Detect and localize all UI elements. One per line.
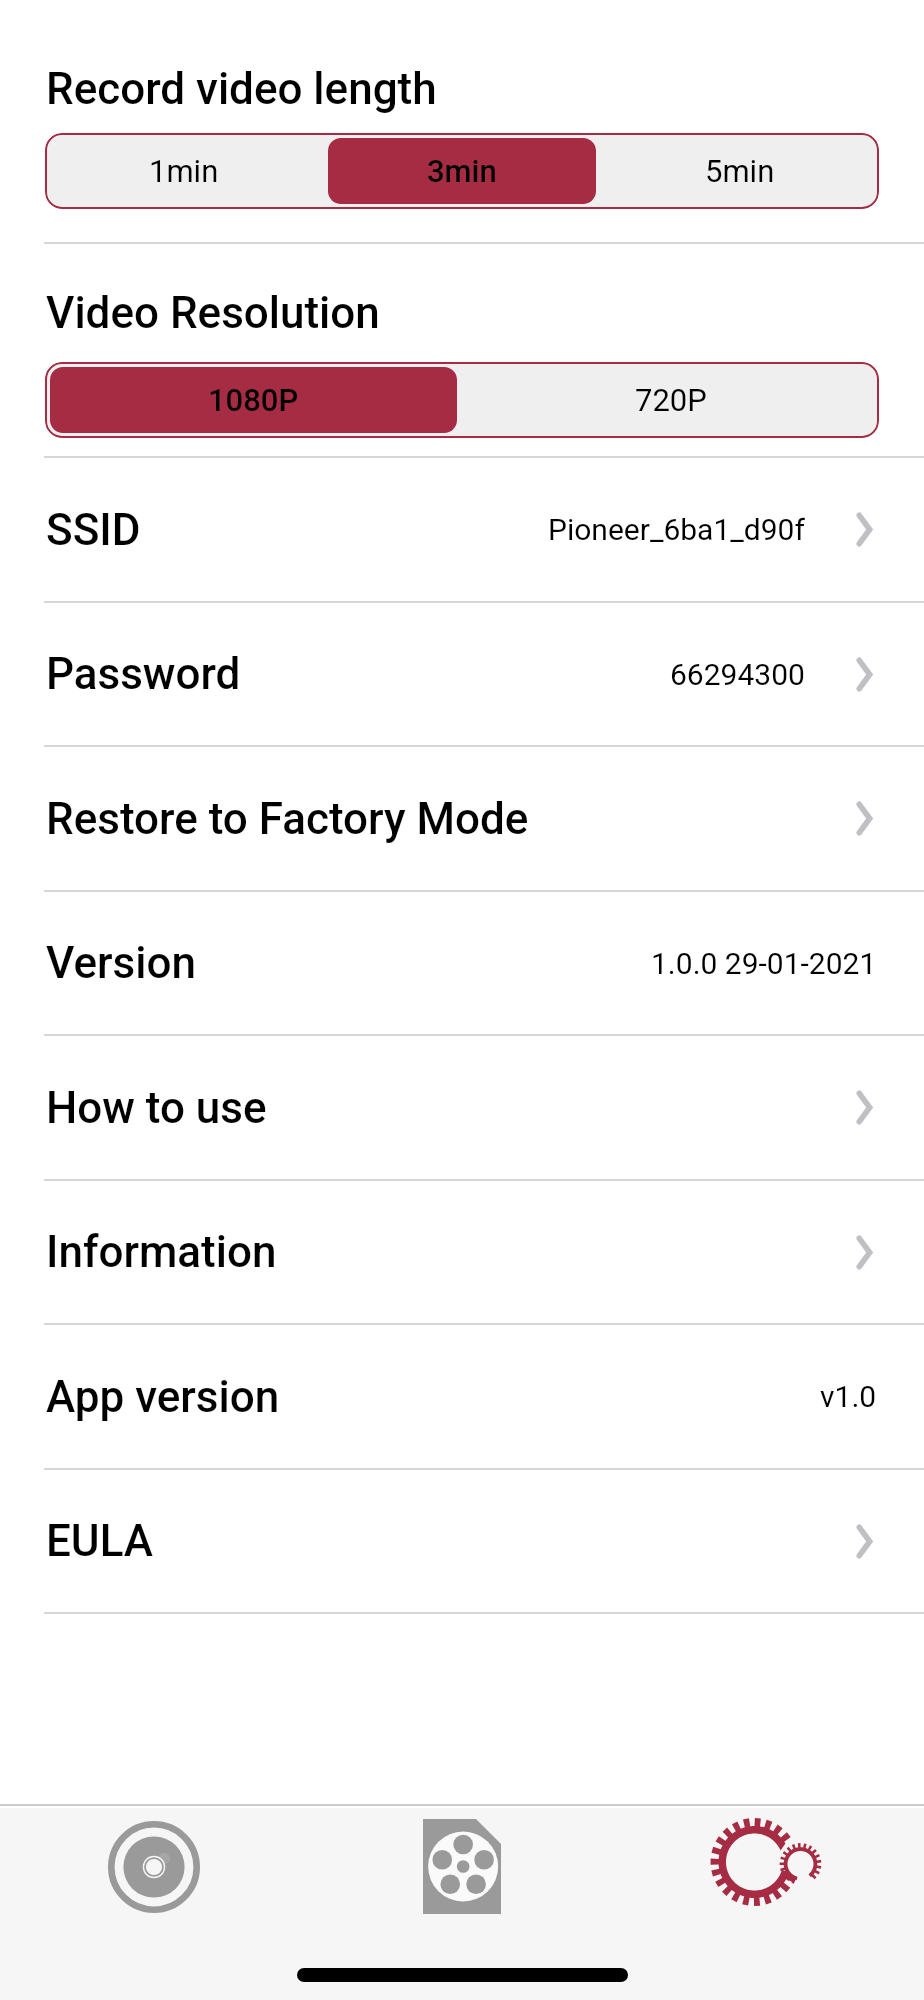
button[interactable]: 720P <box>467 367 874 433</box>
button[interactable]: 3min <box>328 138 596 204</box>
staticText: Video Resolution <box>46 287 380 339</box>
staticText: 1min <box>149 153 219 189</box>
staticText: Restore to Factory Mode <box>46 793 529 845</box>
staticText: 3min <box>427 153 497 189</box>
button[interactable]: 1080P <box>50 367 457 433</box>
staticText: Password <box>46 648 241 700</box>
button[interactable]: 1min <box>50 138 318 204</box>
staticText: SSID <box>46 504 141 556</box>
button[interactable]: SSID <box>0 458 924 601</box>
staticText: 1.0.0 29-01-2021 <box>651 946 877 981</box>
button[interactable]: How to use <box>0 1036 924 1179</box>
staticText: EULA <box>46 1515 153 1567</box>
button[interactable]: Restore to Factory Mode <box>0 747 924 890</box>
staticText: 66294300 <box>670 657 805 692</box>
staticText: Information <box>46 1226 277 1278</box>
staticText: 1080P <box>208 382 299 418</box>
staticText: Pioneer_6ba1_d90f <box>548 512 805 547</box>
staticText: Version <box>46 937 196 989</box>
staticText: Record video length <box>46 63 437 115</box>
staticText: App version <box>46 1371 280 1423</box>
button[interactable]: Videos <box>308 1808 616 1925</box>
button[interactable]: Information <box>0 1181 924 1323</box>
button[interactable]: Password <box>0 603 924 745</box>
staticText: v1.0 <box>820 1379 877 1414</box>
staticText: 5min <box>705 153 775 189</box>
button[interactable]: EULA <box>0 1470 924 1612</box>
button[interactable]: Settings <box>616 1808 924 1925</box>
button[interactable]: App version <box>0 1325 924 1468</box>
button[interactable]: Record <box>0 1808 308 1925</box>
button[interactable]: Version <box>0 892 924 1034</box>
button[interactable]: 5min <box>606 138 874 204</box>
staticText: How to use <box>46 1082 267 1134</box>
staticText: 720P <box>635 382 707 418</box>
